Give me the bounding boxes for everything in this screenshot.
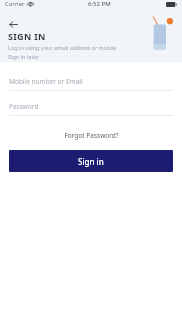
staticText: Sign in (78, 156, 104, 167)
button[interactable]: Sign in (9, 150, 173, 172)
staticText: Password (9, 102, 39, 111)
staticText: 6:52 PM (88, 0, 111, 8)
button[interactable]: Forgot Password? (0, 129, 182, 141)
staticText: Sign in later (8, 53, 39, 60)
staticText: Forgot Password? (64, 131, 119, 140)
staticText: Mobile number or Email (9, 77, 83, 86)
button[interactable]: Password (0, 98, 182, 116)
button[interactable]: Back (3, 14, 23, 34)
staticText: Carrier (5, 0, 25, 8)
button[interactable]: Sign in later (8, 53, 39, 60)
button[interactable]: Mobile number or Email (0, 73, 182, 91)
staticText: SIGN IN (8, 30, 46, 42)
staticText: Log in using your email address or mobil… (8, 44, 117, 51)
